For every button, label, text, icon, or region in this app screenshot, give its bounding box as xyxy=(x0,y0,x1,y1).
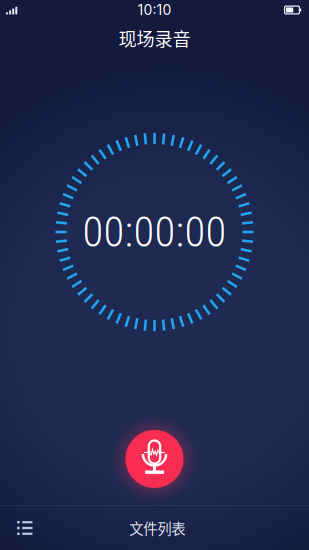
staticText: 00:00:00 xyxy=(82,207,226,257)
staticText: 文件列表 xyxy=(129,518,185,538)
staticText: 现场录音 xyxy=(118,25,190,51)
button[interactable]: Recordings xyxy=(0,506,42,550)
staticText: 10:10 xyxy=(137,1,171,18)
button[interactable]: Record xyxy=(125,430,183,488)
